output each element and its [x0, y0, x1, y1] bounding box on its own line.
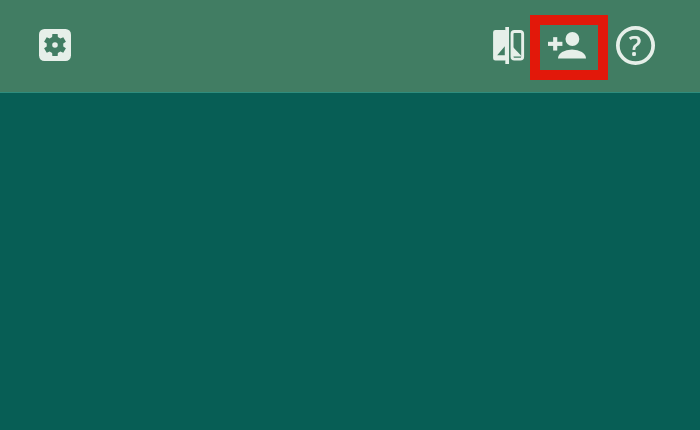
button[interactable]: Flip screen — [485, 21, 533, 69]
button[interactable]: Add person — [543, 21, 591, 69]
staticText: ? — [629, 27, 642, 64]
button[interactable]: Settings — [31, 21, 79, 69]
button[interactable]: Help — [611, 21, 659, 69]
